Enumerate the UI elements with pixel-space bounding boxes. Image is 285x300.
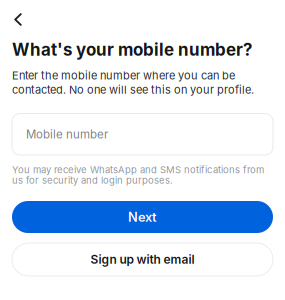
button[interactable]: Back bbox=[12, 6, 42, 32]
button[interactable]: Next bbox=[12, 201, 273, 233]
staticText: What's your mobile number? bbox=[12, 39, 252, 60]
button[interactable]: Sign up with email bbox=[12, 243, 273, 276]
staticText: Next bbox=[128, 209, 157, 225]
staticText: You may receive WhatsApp and SMS notific… bbox=[12, 164, 264, 186]
staticText: Enter the mobile number where you can be… bbox=[12, 69, 254, 96]
staticText: Mobile number bbox=[26, 127, 108, 141]
staticText: Sign up with email bbox=[90, 252, 194, 267]
